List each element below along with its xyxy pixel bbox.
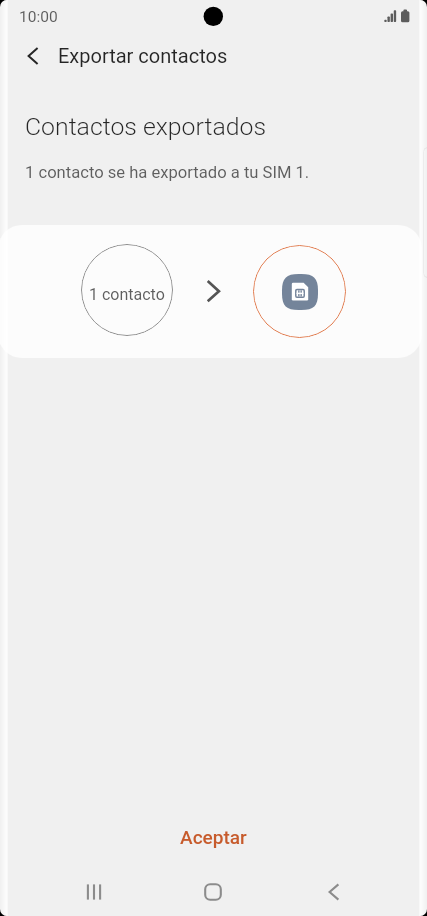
staticText: Exportar contactos xyxy=(58,44,228,67)
button[interactable]: Home xyxy=(185,864,241,916)
button[interactable]: Recent apps xyxy=(66,864,122,916)
button[interactable]: Aceptar xyxy=(0,813,427,861)
button[interactable]: Back xyxy=(306,864,362,916)
staticText: Aceptar xyxy=(180,826,247,848)
staticText: 1 contacto xyxy=(89,285,165,304)
staticText: 10:00 xyxy=(19,8,58,26)
button[interactable]: 1 contacto xyxy=(0,225,422,358)
button[interactable]: Back xyxy=(13,36,53,76)
staticText: 1 contacto se ha exportado a tu SIM 1. xyxy=(25,163,310,182)
staticText: Contactos exportados xyxy=(25,112,266,141)
